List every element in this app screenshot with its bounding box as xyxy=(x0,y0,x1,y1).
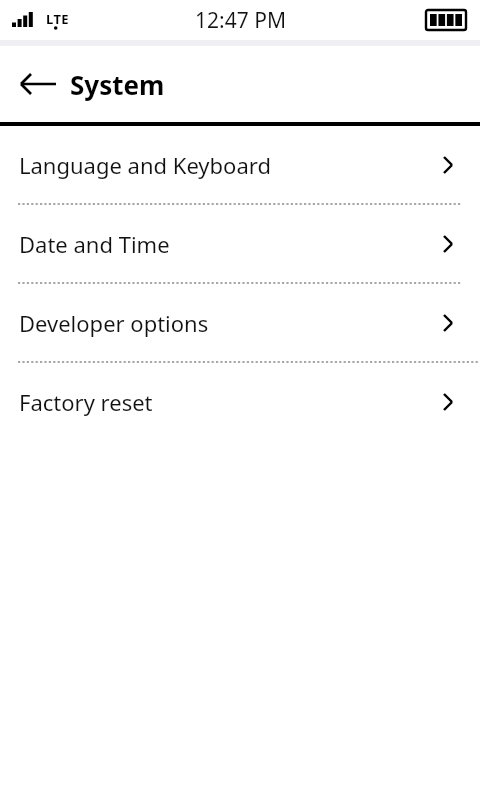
button[interactable]: Factory reset xyxy=(0,363,480,440)
staticText: LTE xyxy=(46,10,69,28)
staticText: Date and Time xyxy=(19,229,438,259)
button[interactable]: Back xyxy=(12,58,64,110)
button[interactable]: Date and Time xyxy=(0,205,480,282)
staticText: Developer options xyxy=(19,308,438,338)
staticText: System xyxy=(70,67,165,102)
staticText: 12:47 PM xyxy=(195,6,286,35)
button[interactable]: Language and Keyboard xyxy=(0,126,480,203)
button[interactable]: Developer options xyxy=(0,284,480,361)
staticText: Language and Keyboard xyxy=(19,150,438,180)
staticText: Factory reset xyxy=(19,387,438,417)
